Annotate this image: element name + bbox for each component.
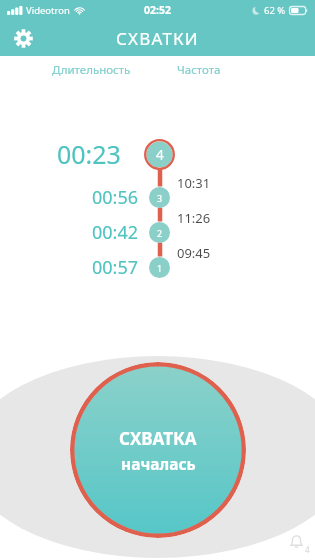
staticText: Частота — [177, 62, 221, 78]
button[interactable]: Settings — [7, 22, 39, 54]
staticText: 2 — [157, 227, 163, 239]
staticText: 10:31 — [177, 174, 211, 192]
staticText: 02:52 — [144, 3, 171, 17]
staticText: Videotron — [26, 4, 70, 17]
staticText: 4 — [305, 544, 310, 555]
staticText: 11:26 — [177, 209, 211, 227]
staticText: СХВАТКА — [119, 427, 197, 450]
staticText: 00:57 — [92, 255, 139, 280]
staticText: 62 % — [264, 4, 286, 17]
button[interactable]: Notifications — [282, 527, 310, 555]
staticText: 1 — [157, 262, 163, 274]
staticText: 00:23 — [57, 137, 121, 171]
staticText: 00:42 — [92, 220, 139, 245]
button[interactable]: 00:42 — [20, 218, 290, 246]
staticText: 09:45 — [177, 244, 211, 262]
button[interactable]: СХВАТКА — [70, 362, 246, 538]
staticText: 00:56 — [92, 185, 139, 210]
staticText: 3 — [157, 192, 163, 204]
button[interactable]: 00:57 — [20, 253, 290, 281]
button[interactable]: 00:23 — [20, 137, 290, 171]
staticText: Длительность — [52, 62, 131, 78]
staticText: 4 — [156, 146, 164, 164]
button[interactable]: 00:56 — [20, 183, 290, 211]
staticText: СХВАТКИ — [116, 27, 199, 50]
staticText: началась — [121, 453, 196, 474]
